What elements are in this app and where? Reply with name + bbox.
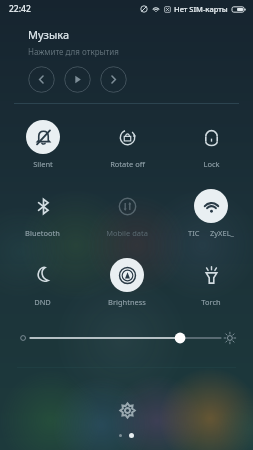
button[interactable]: Brightness slider: [0, 327, 253, 349]
staticText: Silent: [33, 159, 53, 169]
staticText: Нажмите для открытия: [28, 46, 119, 57]
button[interactable]: Settings: [114, 397, 140, 423]
button[interactable]: Mobile data: [85, 187, 169, 240]
staticText: ZyXEL_: [210, 228, 234, 238]
button[interactable]: Lock: [169, 118, 253, 171]
staticText: TIC: [188, 228, 200, 238]
staticText: 22:42: [9, 3, 31, 15]
button[interactable]: Next: [100, 66, 127, 93]
staticText: Bluetooth: [25, 228, 60, 238]
button[interactable]: TIC: [169, 187, 253, 240]
staticText: Нет SIM-карты: [174, 4, 228, 14]
staticText: Музыка: [28, 27, 70, 42]
staticText: Rotate off: [110, 159, 145, 169]
staticText: DND: [34, 297, 51, 307]
button[interactable]: Play: [64, 66, 91, 93]
button[interactable]: Brightness: [85, 256, 169, 309]
button[interactable]: DND: [0, 256, 85, 309]
staticText: Torch: [201, 297, 221, 307]
button[interactable]: Музыка: [0, 23, 253, 93]
button[interactable]: Previous: [28, 66, 55, 93]
button[interactable]: Bluetooth: [0, 187, 85, 240]
button[interactable]: Rotate off: [85, 118, 169, 171]
button[interactable]: Torch: [169, 256, 253, 309]
button[interactable]: Silent: [0, 118, 85, 171]
staticText: Mobile data: [106, 228, 148, 238]
staticText: Brightness: [108, 297, 146, 307]
staticText: Lock: [203, 159, 220, 169]
